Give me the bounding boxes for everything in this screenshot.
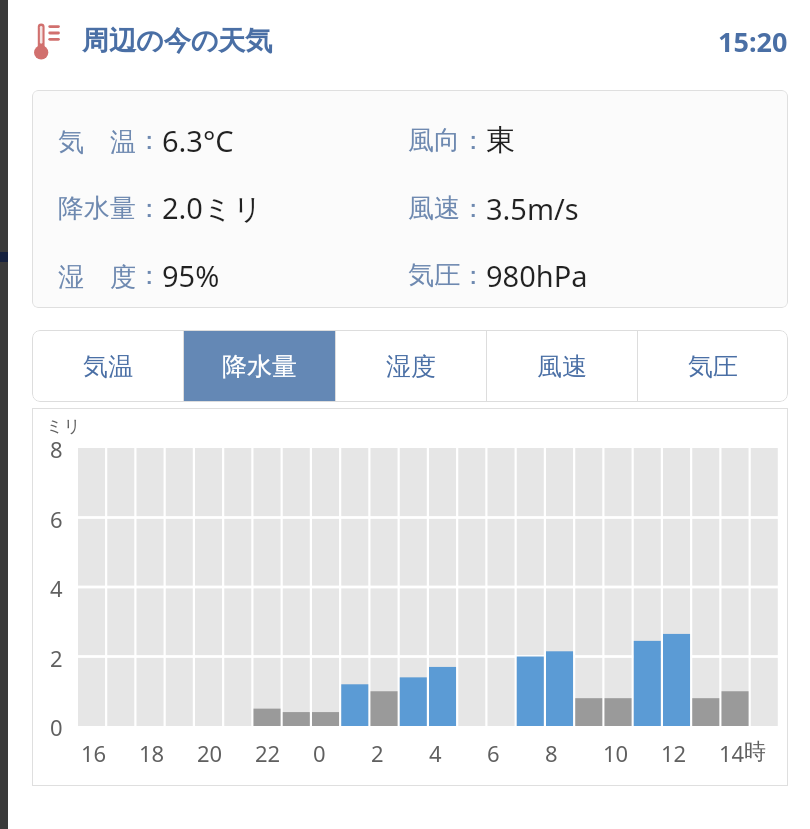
staticText: 6: [487, 738, 500, 768]
staticText: 湿 度: [58, 258, 136, 294]
staticText: ：: [136, 192, 162, 225]
staticText: 風速: [537, 351, 587, 382]
staticText: ：: [460, 124, 486, 157]
staticText: 4: [50, 573, 63, 603]
staticText: 14: [719, 738, 745, 768]
staticText: 10: [603, 738, 629, 768]
staticText: 6: [50, 504, 63, 534]
staticText: 20: [197, 738, 223, 768]
staticText: ：: [460, 259, 486, 292]
button[interactable]: 気温: [32, 330, 183, 402]
staticText: 12: [661, 738, 687, 768]
staticText: 2.0ミリ: [162, 188, 263, 228]
other: Temperature: [32, 19, 66, 63]
button[interactable]: 気 温: [32, 90, 788, 308]
staticText: 風速: [408, 192, 460, 225]
staticText: 18: [139, 738, 165, 768]
staticText: 6.3°C: [162, 121, 234, 160]
staticText: 2: [371, 738, 384, 768]
staticText: 22: [255, 738, 281, 768]
staticText: 気 温: [58, 123, 136, 159]
staticText: ミリ: [46, 416, 81, 437]
button[interactable]: 湿度: [336, 330, 486, 402]
staticText: 降水量: [222, 351, 297, 382]
button[interactable]: 気圧: [638, 330, 788, 402]
staticText: 8: [50, 434, 63, 464]
staticText: 2: [50, 643, 63, 673]
staticText: 気温: [83, 351, 133, 382]
staticText: 降水量: [58, 192, 136, 225]
staticText: 15:20: [718, 23, 788, 60]
staticText: 周辺の今の天気: [82, 24, 273, 58]
staticText: ：: [460, 192, 486, 225]
staticText: 0: [313, 738, 326, 768]
button[interactable]: 降水量: [184, 330, 335, 402]
staticText: 16: [81, 738, 107, 768]
staticText: 時: [744, 738, 766, 766]
button[interactable]: ミリ: [32, 408, 788, 786]
staticText: ：: [136, 259, 162, 292]
staticText: 0: [50, 712, 63, 742]
staticText: 8: [545, 738, 558, 768]
staticText: 東: [486, 122, 515, 159]
staticText: 980hPa: [486, 256, 588, 295]
staticText: 気圧: [688, 351, 738, 382]
staticText: ：: [136, 124, 162, 157]
staticText: 3.5m/s: [486, 189, 579, 228]
staticText: 気圧: [408, 259, 460, 292]
staticText: 湿度: [386, 351, 436, 382]
staticText: 95%: [162, 256, 220, 295]
staticText: 風向: [408, 124, 460, 157]
staticText: 4: [429, 738, 442, 768]
button[interactable]: 風速: [487, 330, 637, 402]
